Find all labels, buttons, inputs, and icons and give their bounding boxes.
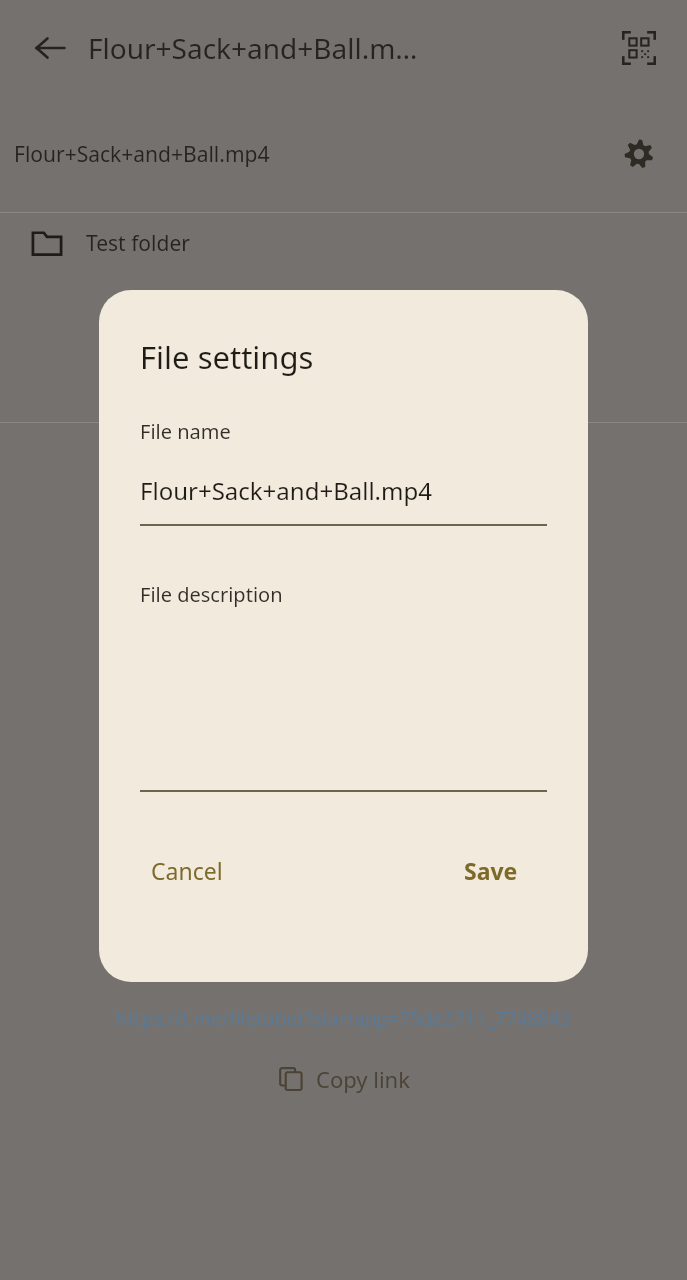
staticText: Flour+Sack+and+Ball.mp4 bbox=[14, 140, 613, 169]
button[interactable]: Cancel bbox=[143, 849, 231, 892]
staticText: Save bbox=[464, 855, 518, 886]
button[interactable]: Test folder bbox=[0, 213, 687, 273]
button[interactable]: File settings bbox=[613, 128, 665, 180]
button[interactable]: Show QR code bbox=[613, 22, 665, 74]
staticText: Copy link bbox=[316, 1064, 410, 1094]
staticText: File name bbox=[140, 418, 231, 445]
staticText: File description bbox=[140, 581, 283, 608]
staticText: Flour+Sack+and+Ball.mp4 bbox=[140, 474, 432, 507]
staticText: Test folder bbox=[86, 229, 190, 258]
staticText: File settings bbox=[140, 336, 314, 378]
staticText: Cancel bbox=[151, 855, 223, 886]
staticText: Flour+Sack+and+Ball.m… bbox=[88, 29, 613, 67]
button[interactable]: Back bbox=[22, 20, 78, 76]
staticText: https://t.me/filetobot?startapp=75de2711… bbox=[116, 1006, 572, 1032]
button[interactable]: Save bbox=[456, 849, 526, 892]
button[interactable]: Copy link bbox=[268, 1058, 420, 1100]
